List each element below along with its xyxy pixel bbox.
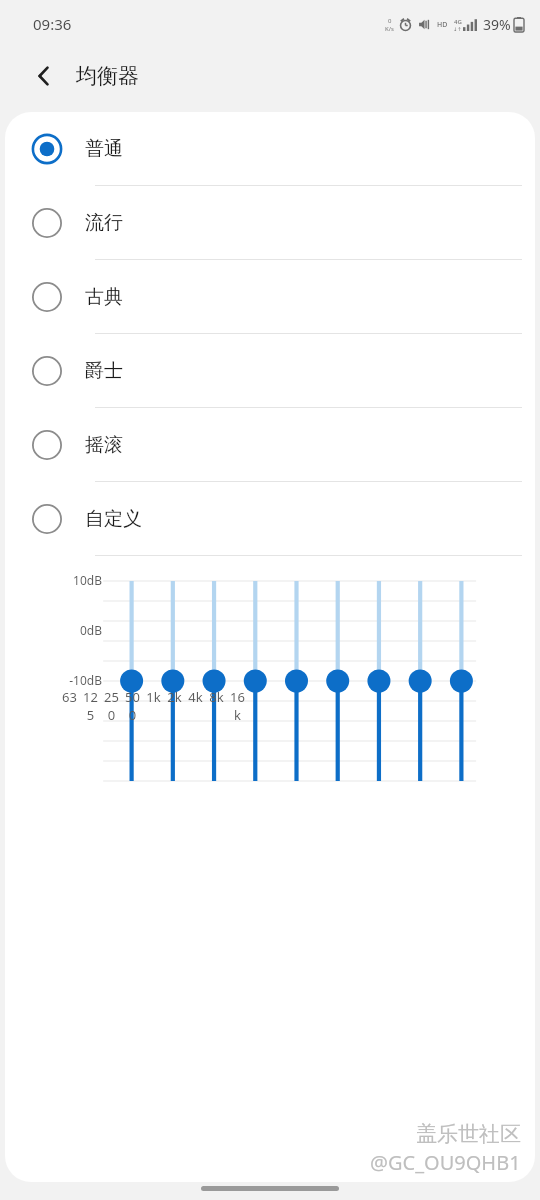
staticText: 4G xyxy=(454,18,462,26)
staticText: 古典 xyxy=(85,285,123,309)
staticText: 0dB xyxy=(57,622,102,638)
staticText: 4k xyxy=(185,688,206,706)
staticText: 250 xyxy=(101,688,122,724)
button[interactable]: 自定义 xyxy=(5,482,535,555)
staticText: HD xyxy=(437,20,448,30)
staticText: 爵士 xyxy=(85,359,123,383)
staticText: 盖乐世社区 xyxy=(416,1121,521,1147)
staticText: 自定义 xyxy=(85,507,142,531)
button[interactable]: Back xyxy=(20,52,68,100)
staticText: -10dB xyxy=(53,672,102,688)
staticText: 125 xyxy=(80,688,101,724)
staticText: 流行 xyxy=(85,211,123,235)
staticText: 普通 xyxy=(85,137,123,161)
staticText: 09:36 xyxy=(33,14,72,34)
staticText: 39% xyxy=(483,15,511,34)
staticText: 500 xyxy=(122,688,143,724)
button[interactable]: 摇滚 xyxy=(5,408,535,481)
button[interactable]: 流行 xyxy=(5,186,535,259)
staticText: 10dB xyxy=(57,572,102,588)
button[interactable]: 爵士 xyxy=(5,334,535,407)
staticText: 16k xyxy=(227,688,248,724)
staticText: 0 xyxy=(388,17,392,25)
staticText: ↓↑ xyxy=(453,26,462,32)
staticText: K/s xyxy=(385,25,394,33)
staticText: 1k xyxy=(143,688,164,706)
staticText: 摇滚 xyxy=(85,433,123,457)
button[interactable]: 普通 xyxy=(5,112,535,185)
staticText: 2k xyxy=(164,688,185,706)
staticText: 均衡器 xyxy=(76,63,139,89)
staticText: @GC_OU9QHB1 xyxy=(370,1149,521,1176)
staticText: 63 xyxy=(59,688,80,706)
button[interactable]: 古典 xyxy=(5,260,535,333)
staticText: 8k xyxy=(206,688,227,706)
